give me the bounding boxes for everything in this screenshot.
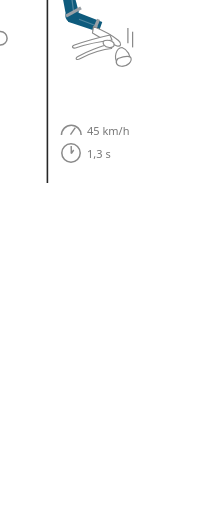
staticText: 1,3 s — [87, 146, 111, 161]
staticText: 45 km/h — [87, 123, 130, 138]
